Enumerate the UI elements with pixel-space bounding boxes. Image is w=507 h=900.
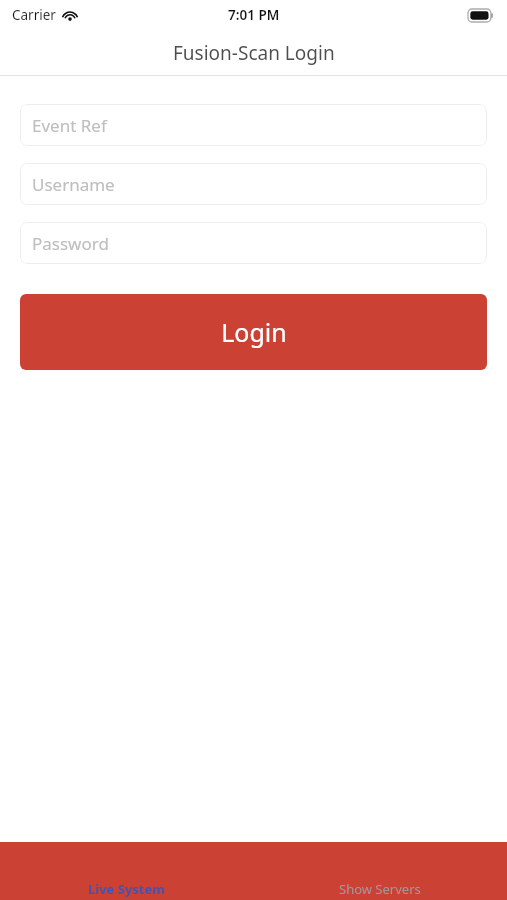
- button[interactable]: Password: [20, 222, 487, 264]
- staticText: Event Ref: [32, 114, 107, 137]
- button[interactable]: Show Servers: [253, 842, 507, 900]
- staticText: 7:01 PM: [228, 6, 280, 24]
- staticText: Show Servers: [339, 880, 421, 898]
- staticText: Login: [221, 315, 287, 349]
- staticText: Username: [32, 173, 115, 196]
- staticText: Live System: [88, 880, 165, 898]
- staticText: Fusion-Scan Login: [173, 40, 335, 66]
- button[interactable]: Login: [20, 294, 487, 370]
- staticText: Carrier: [12, 6, 56, 24]
- staticText: Password: [32, 232, 109, 255]
- button[interactable]: Event Ref: [20, 104, 487, 146]
- button[interactable]: Live System: [0, 842, 253, 900]
- button[interactable]: Username: [20, 163, 487, 205]
